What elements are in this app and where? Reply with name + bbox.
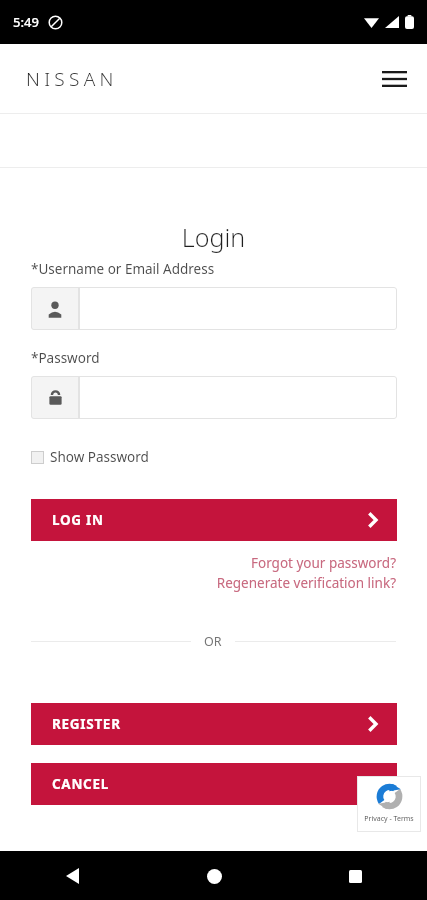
staticText: Login (0, 220, 427, 254)
button[interactable]: Menu (375, 60, 413, 98)
staticText: Privacy - Terms (357, 814, 421, 824)
staticText: CANCEL (52, 775, 109, 793)
button[interactable] (79, 287, 397, 330)
button[interactable]: Recents (335, 856, 375, 896)
staticText: Show Password (50, 448, 149, 466)
staticText: 5:49 (13, 13, 39, 31)
staticText: *Username or Email Address (31, 260, 215, 278)
button[interactable]: Forgot your password? (0, 554, 396, 572)
staticText: REGISTER (52, 715, 121, 733)
staticText: NISSAN (26, 66, 118, 92)
button[interactable]: Show Password (31, 447, 149, 467)
button[interactable]: Back (52, 856, 92, 896)
button[interactable]: Home (194, 856, 234, 896)
staticText: LOG IN (52, 511, 104, 529)
staticText: *Password (31, 349, 100, 367)
button[interactable]: LOG IN (31, 499, 397, 541)
button[interactable] (79, 376, 397, 419)
staticText: OR (204, 633, 222, 650)
button[interactable]: reCAPTCHA Privacy Terms (357, 776, 421, 832)
button[interactable]: Regenerate verification link? (0, 574, 396, 592)
button[interactable]: CANCEL (31, 763, 397, 805)
button[interactable]: REGISTER (31, 703, 397, 745)
